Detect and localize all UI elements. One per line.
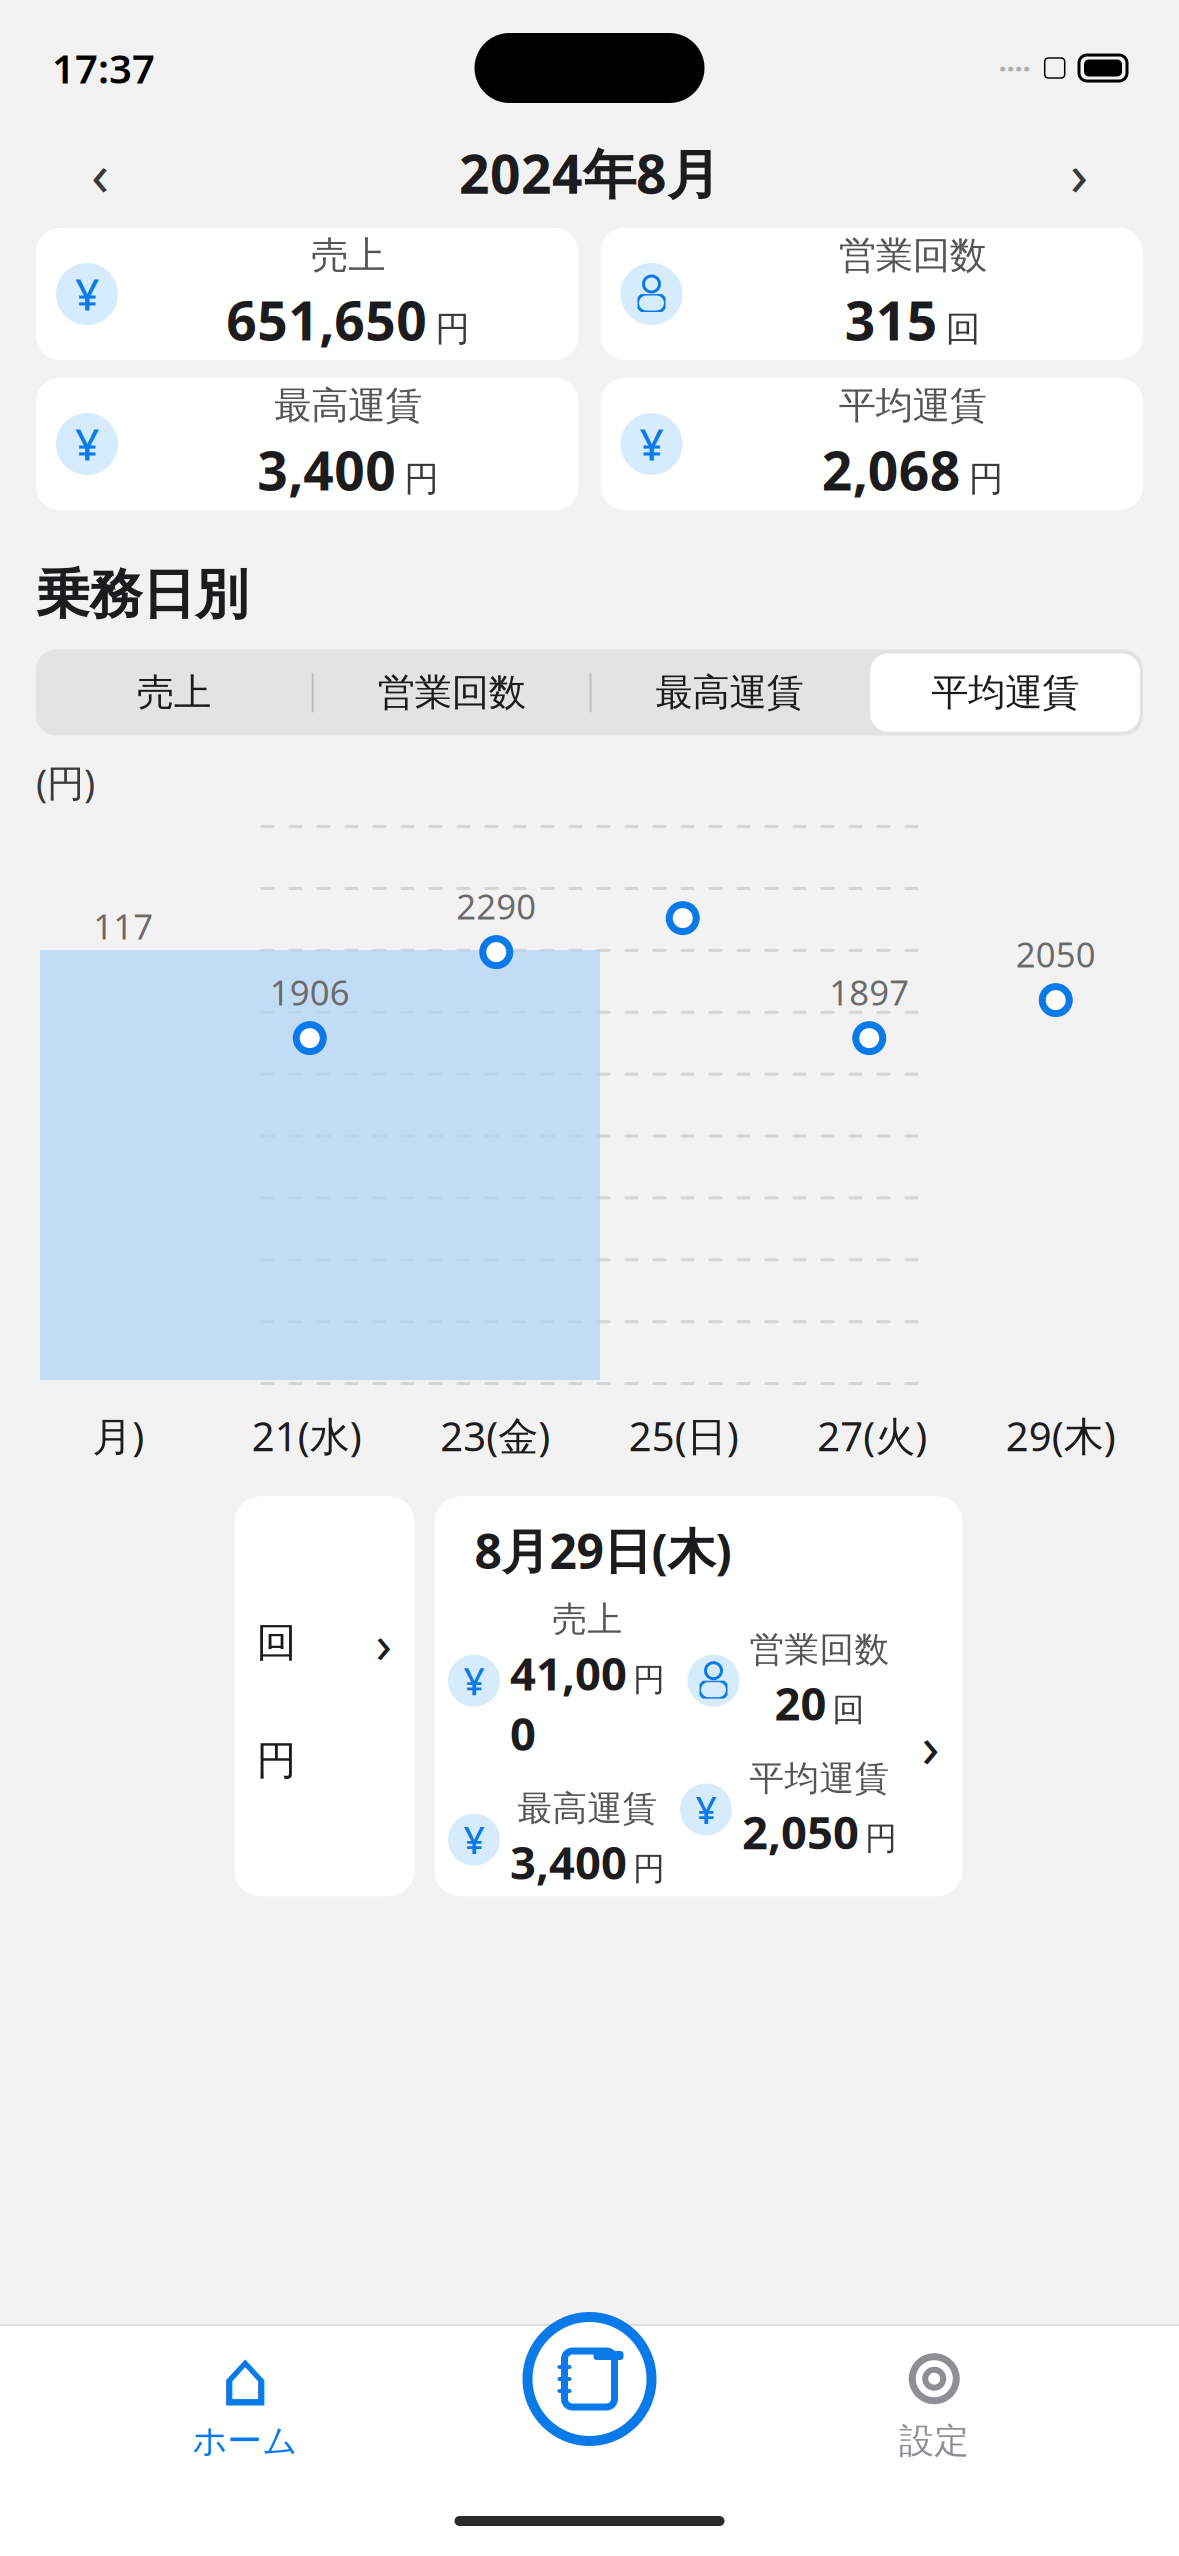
staticText: 2290: [456, 883, 536, 929]
staticText: 20: [774, 1673, 826, 1733]
button[interactable]: ⌂: [0, 2326, 489, 2486]
staticText: ¥: [75, 266, 99, 322]
staticText: 最高運賃: [274, 383, 422, 429]
staticText: 円: [633, 1849, 665, 1888]
staticText: 最高運賃: [655, 670, 803, 715]
button[interactable]: 設定: [689, 2326, 1179, 2486]
staticText: ›: [921, 1706, 939, 1784]
staticText: ›: [1070, 134, 1088, 212]
staticText: 円: [404, 458, 439, 500]
staticText: ¥: [463, 1815, 484, 1864]
button[interactable]: 最高運賃: [591, 649, 867, 735]
staticText: ¥: [75, 416, 99, 472]
button[interactable]: 8月29日(木): [434, 1496, 962, 1896]
button[interactable]: 平均運賃: [867, 649, 1143, 735]
staticText: 円: [633, 1660, 665, 1699]
staticText: 1906: [270, 969, 350, 1015]
staticText: 回: [946, 308, 981, 350]
staticText: ¥: [463, 1656, 484, 1705]
staticText: 売上: [137, 670, 211, 715]
staticText: ›: [375, 1607, 392, 1678]
staticText: 25(日): [629, 1409, 739, 1462]
staticText: 315: [845, 284, 938, 355]
staticText: 1897: [829, 969, 909, 1015]
staticText: 最高運賃: [517, 1787, 657, 1830]
staticText: 設定: [899, 2420, 969, 2462]
staticText: (円): [36, 757, 95, 807]
staticText: 円: [865, 1819, 897, 1858]
staticText: 117: [93, 903, 153, 949]
button[interactable]: 営業回数: [314, 649, 590, 735]
staticText: 17:37: [52, 41, 155, 94]
staticText: ¥: [639, 416, 663, 472]
staticText: 2,050: [742, 1802, 859, 1862]
staticText: ホーム: [192, 2420, 297, 2462]
button[interactable]: 前の月: [60, 133, 140, 213]
staticText: 8月29日(木): [474, 1518, 731, 1582]
staticText: 2,068: [822, 434, 961, 505]
button[interactable]: 次の月: [1039, 133, 1119, 213]
staticText: 営業回数: [839, 233, 987, 279]
button[interactable]: 回: [234, 1496, 414, 1896]
staticText: 651,650: [226, 284, 427, 355]
staticText: 3,400: [510, 1832, 627, 1892]
staticText: 営業回数: [749, 1628, 889, 1671]
staticText: 2024年8月: [459, 138, 720, 208]
staticText: 平均運賃: [749, 1757, 889, 1800]
staticText: 41,000: [510, 1643, 627, 1763]
staticText: 乗務日別: [36, 562, 248, 627]
staticText: 2050: [1016, 931, 1096, 977]
staticText: 平均運賃: [931, 670, 1079, 715]
staticText: ····: [998, 48, 1030, 87]
staticText: 円: [435, 308, 470, 350]
staticText: 月): [92, 1409, 144, 1462]
staticText: 回: [832, 1690, 864, 1730]
staticText: 21(水): [252, 1409, 362, 1462]
button[interactable]: 売上: [36, 649, 312, 735]
staticText: 平均運賃: [839, 383, 987, 429]
staticText: ¥: [695, 1785, 716, 1834]
staticText: 27(火): [817, 1409, 927, 1462]
staticText: 営業回数: [378, 670, 526, 715]
staticText: ‹: [91, 134, 109, 212]
staticText: 3,400: [257, 434, 396, 505]
staticText: 売上: [311, 233, 385, 279]
staticText: 回: [256, 1618, 296, 1667]
button[interactable]: 記録を追加: [527, 2317, 651, 2441]
staticText: ⌂: [220, 2335, 269, 2423]
staticText: 23(金): [440, 1409, 550, 1462]
staticText: 円: [969, 458, 1004, 500]
staticText: 29(木): [1006, 1409, 1116, 1462]
staticText: 売上: [552, 1598, 622, 1641]
staticText: 円: [256, 1736, 296, 1785]
